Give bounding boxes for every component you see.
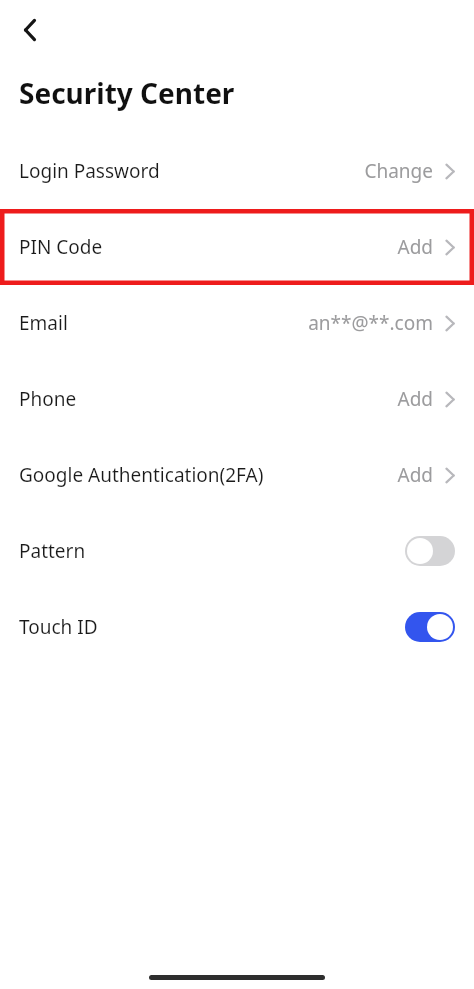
button[interactable]: Email bbox=[0, 285, 474, 361]
staticText: Add bbox=[397, 234, 433, 260]
button[interactable]: Touch ID bbox=[0, 589, 474, 665]
button[interactable]: Toggle on bbox=[405, 612, 455, 642]
button[interactable]: Google Authentication(2FA) bbox=[0, 437, 474, 513]
staticText: Phone bbox=[19, 386, 77, 412]
staticText: Email bbox=[19, 310, 68, 336]
staticText: Security Center bbox=[19, 74, 235, 112]
staticText: Pattern bbox=[19, 538, 86, 564]
button[interactable]: Toggle off bbox=[405, 536, 455, 566]
staticText: Touch ID bbox=[19, 614, 98, 640]
button[interactable]: Login Password bbox=[0, 133, 474, 209]
staticText: PIN Code bbox=[19, 234, 103, 260]
staticText: Change bbox=[364, 158, 433, 184]
staticText: Login Password bbox=[19, 158, 160, 184]
staticText: Add bbox=[397, 462, 433, 488]
button[interactable]: Pattern bbox=[0, 513, 474, 589]
button[interactable]: PIN Code bbox=[0, 209, 474, 285]
button[interactable]: Phone bbox=[0, 361, 474, 437]
button[interactable]: Back bbox=[8, 8, 52, 52]
staticText: Google Authentication(2FA) bbox=[19, 462, 264, 488]
staticText: an**@**.com bbox=[308, 310, 433, 336]
staticText: Add bbox=[397, 386, 433, 412]
